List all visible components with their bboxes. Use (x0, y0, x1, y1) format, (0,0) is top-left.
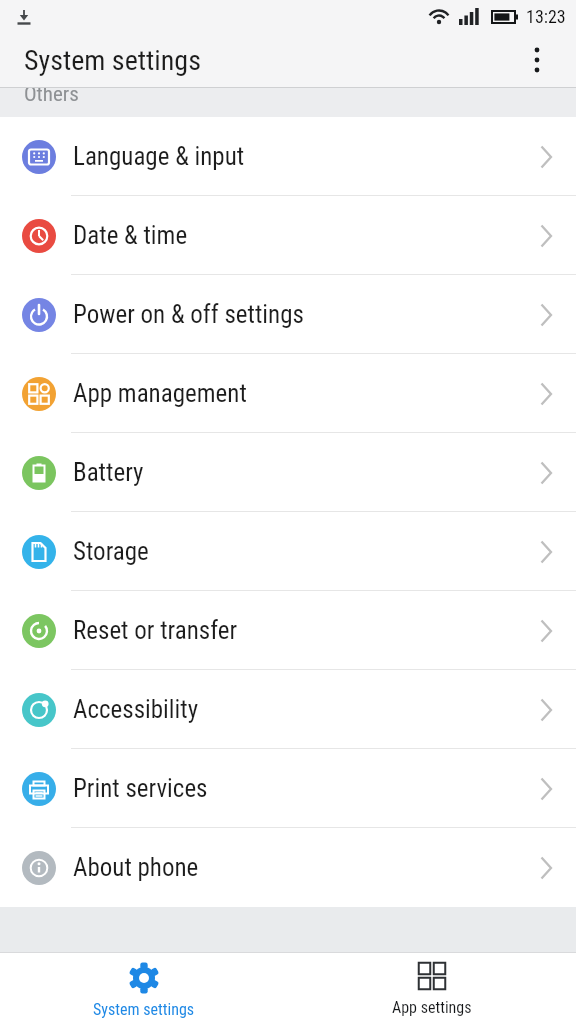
staticText: 13:23 (526, 6, 566, 27)
staticText: Storage (73, 537, 149, 566)
staticText: Date & time (73, 221, 188, 250)
button[interactable]: Reset or transfer (0, 591, 576, 670)
staticText: Battery (73, 458, 144, 487)
button[interactable]: System settings (0, 953, 288, 1024)
staticText: Reset or transfer (73, 616, 238, 645)
button[interactable]: Language & input (0, 117, 576, 196)
staticText: App management (73, 379, 247, 408)
button[interactable]: Date & time (0, 196, 576, 275)
button[interactable]: Accessibility (0, 670, 576, 749)
staticText: Power on & off settings (73, 300, 304, 329)
staticText: Print services (73, 774, 208, 803)
button[interactable]: App settings (288, 953, 576, 1024)
button[interactable] (534, 47, 540, 73)
staticText: App settings (392, 998, 472, 1017)
staticText: System settings (24, 44, 201, 77)
button[interactable]: Power on & off settings (0, 275, 576, 354)
button[interactable]: Storage (0, 512, 576, 591)
button[interactable]: Print services (0, 749, 576, 828)
staticText: Language & input (73, 142, 245, 171)
staticText: Accessibility (73, 695, 199, 724)
button[interactable]: App management (0, 354, 576, 433)
staticText: About phone (73, 853, 199, 882)
button[interactable]: About phone (0, 828, 576, 907)
button[interactable]: Battery (0, 433, 576, 512)
staticText: System settings (93, 1000, 195, 1019)
staticText: Others (24, 88, 79, 107)
